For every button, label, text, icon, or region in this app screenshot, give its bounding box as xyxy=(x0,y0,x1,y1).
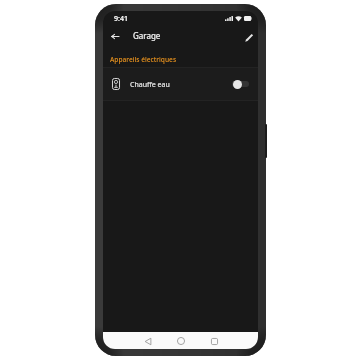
button[interactable]: Back xyxy=(107,29,122,44)
button[interactable]: Chauffe eau xyxy=(103,67,258,101)
button[interactable]: Edit xyxy=(242,30,257,45)
staticText: Chauffe eau xyxy=(130,80,170,90)
button[interactable]: Recents xyxy=(208,335,220,347)
staticText: Appareils électriques xyxy=(110,55,177,64)
staticText: 9:41 xyxy=(114,14,128,24)
button[interactable]: Back xyxy=(142,335,154,347)
staticText: Garage xyxy=(133,30,161,41)
button[interactable]: Home xyxy=(175,335,187,347)
button[interactable]: Chauffe eau toggle xyxy=(232,79,249,89)
